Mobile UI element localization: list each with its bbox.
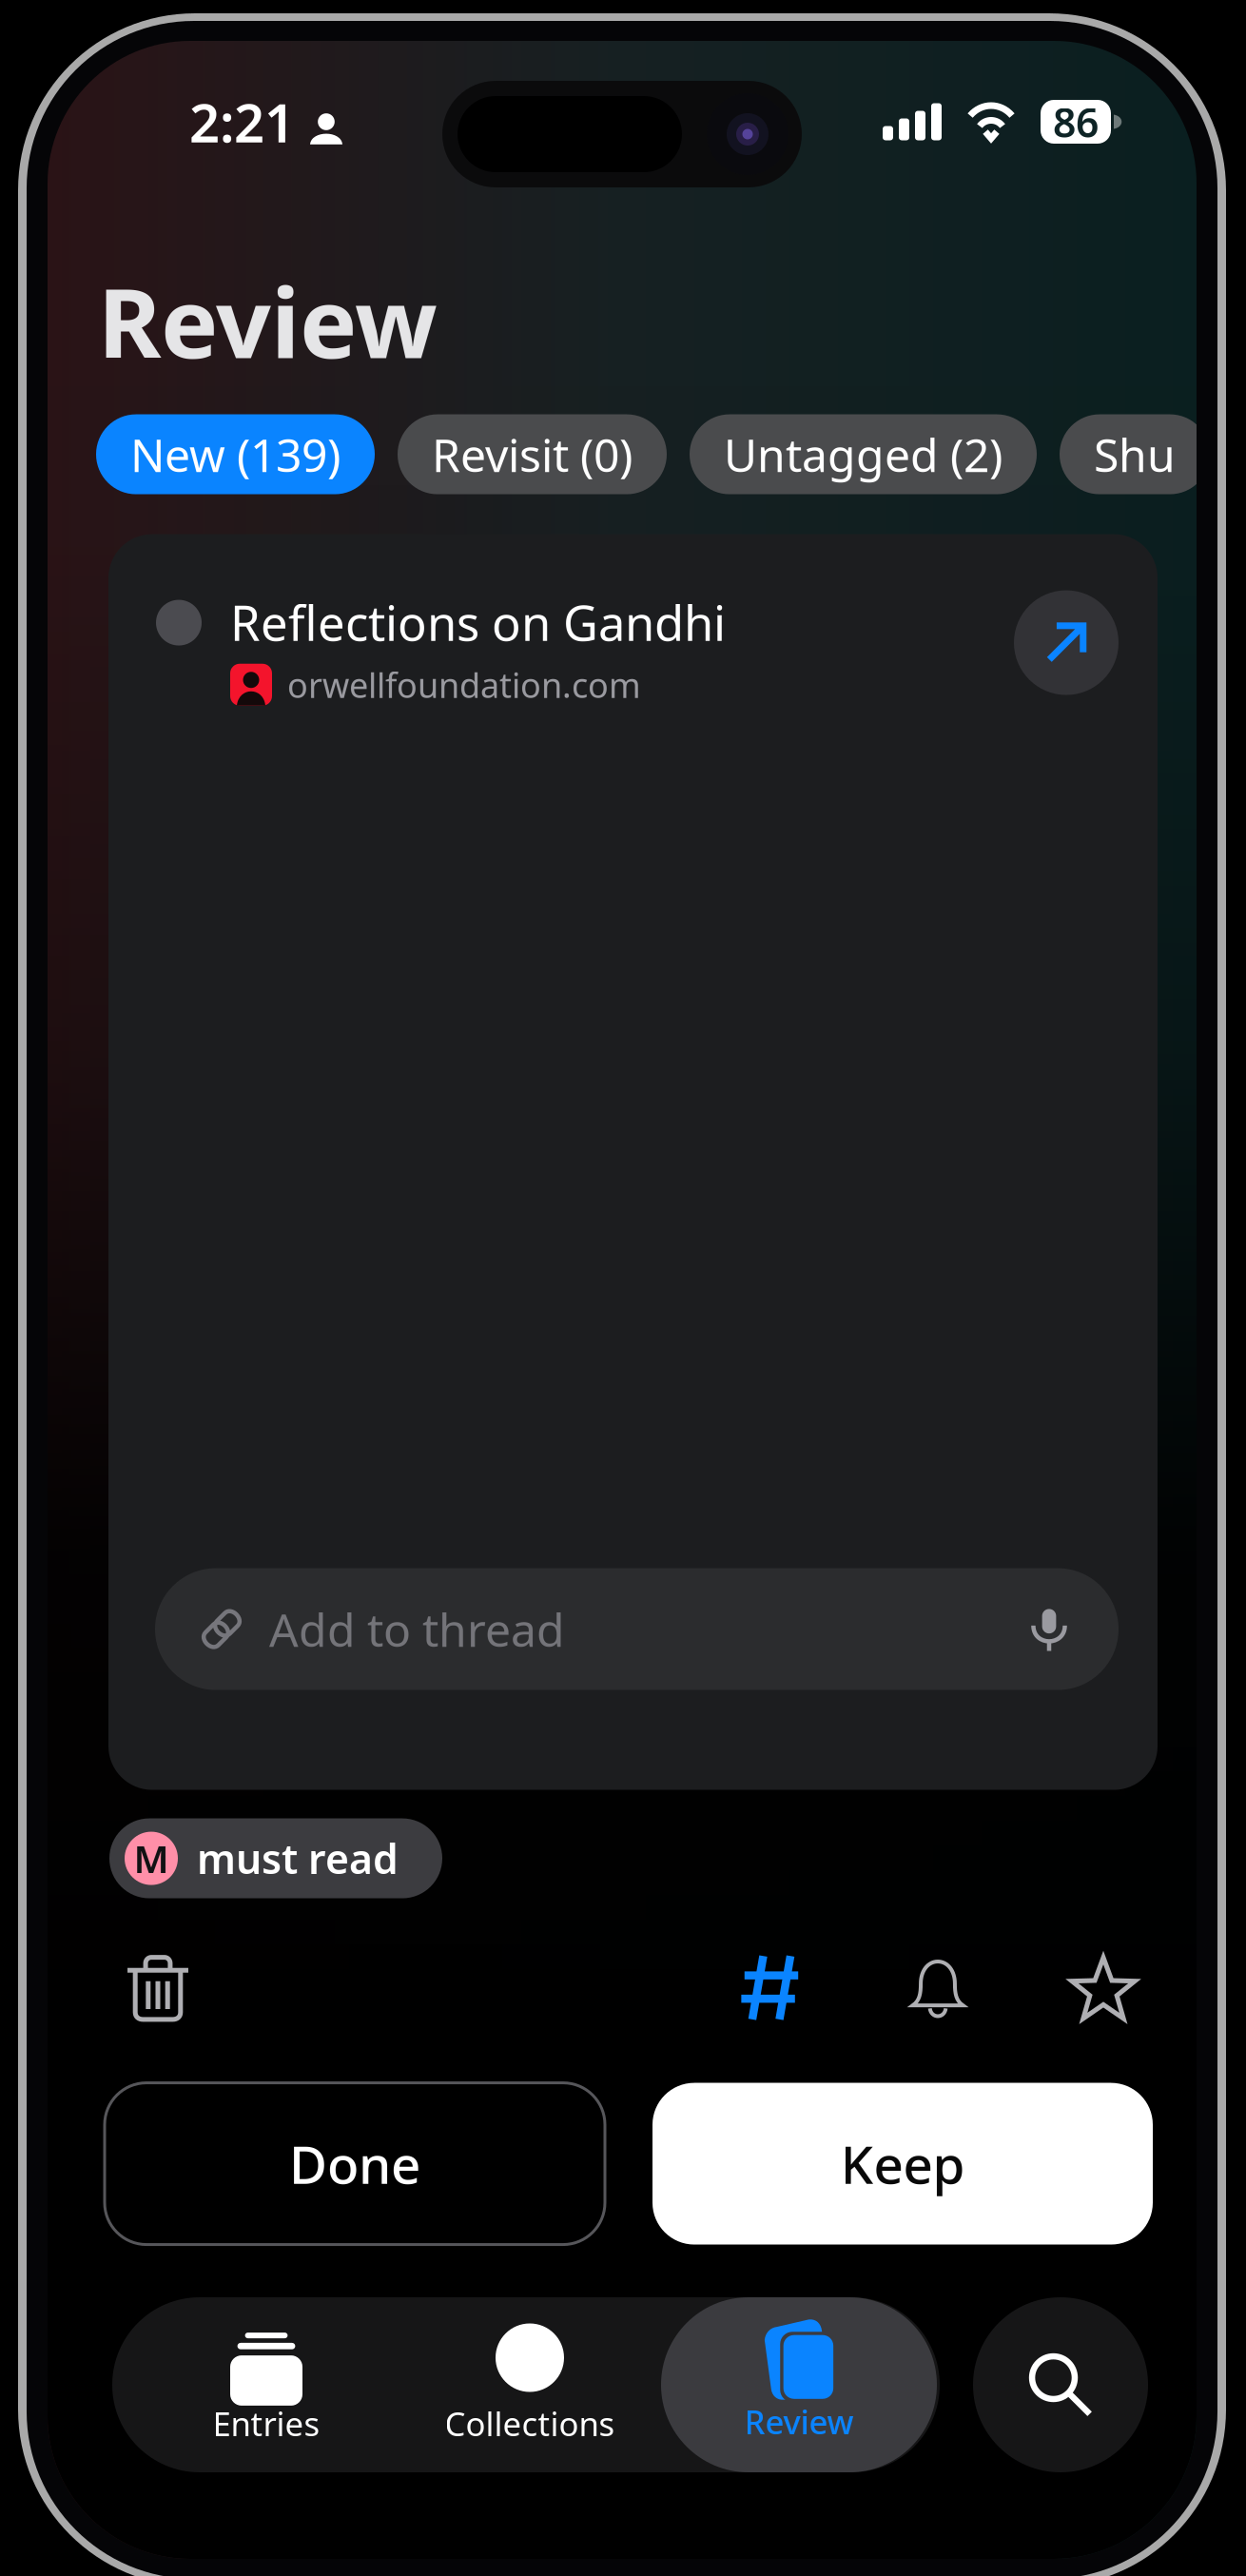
staticText: Collections (445, 2401, 615, 2445)
staticText: 86 (1053, 95, 1099, 149)
button[interactable]: Tag (723, 1938, 822, 2037)
button[interactable]: Review (661, 2297, 937, 2472)
button[interactable]: Shu (1060, 414, 1210, 494)
button[interactable]: M (109, 1818, 442, 1898)
staticText: Add to thread (269, 1599, 565, 1659)
staticText: must read (197, 1831, 399, 1885)
button[interactable]: Favourite (1054, 1938, 1153, 2037)
button[interactable]: Untagged (2) (690, 414, 1037, 494)
button[interactable]: Search (970, 2297, 1151, 2472)
button[interactable]: Keep (652, 2083, 1153, 2245)
staticText: Done (289, 2129, 420, 2198)
button[interactable]: Delete (108, 1938, 207, 2037)
staticText: Revisit (0) (432, 424, 633, 485)
button[interactable]: Collections (399, 2297, 661, 2472)
staticText: M (134, 1833, 169, 1884)
button[interactable]: Done (105, 2083, 605, 2245)
staticText: New (139) (130, 424, 341, 485)
staticText: Entries (213, 2401, 320, 2445)
button[interactable]: Remind me (888, 1938, 987, 2037)
staticText: Keep (840, 2129, 965, 2198)
button[interactable]: Revisit (0) (398, 414, 667, 494)
staticText: orwellfoundation.com (287, 662, 641, 707)
staticText: Shu (1094, 424, 1176, 485)
staticText: Review (98, 257, 438, 385)
staticText: Review (744, 2400, 854, 2443)
button[interactable]: Open link (1014, 590, 1119, 695)
staticText: Reflections on Gandhi (230, 590, 726, 654)
button[interactable]: Entries (134, 2297, 399, 2472)
staticText: Untagged (2) (724, 424, 1003, 485)
button[interactable]: New (139) (96, 414, 375, 494)
staticText: 2:21 (189, 86, 295, 157)
